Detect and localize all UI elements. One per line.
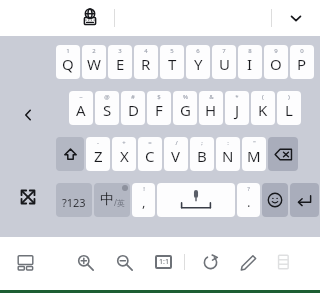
staticText: , [142,193,146,211]
button[interactable]: ; [190,137,214,171]
button[interactable]: Actual size [146,245,180,279]
staticText: = [148,139,152,147]
staticText: W [87,54,101,74]
staticText: 2 [92,47,96,55]
button[interactable]: Layout [8,245,42,279]
button[interactable]: 3 [108,45,132,79]
staticText: 3 [118,47,122,55]
button[interactable]: @ [95,91,119,125]
staticText: Y [194,54,203,74]
staticText: /英 [114,197,125,208]
staticText: Q [62,54,74,74]
button[interactable]: 7 [212,45,236,79]
staticText: ~ [79,93,83,101]
button[interactable]: ? [237,183,260,217]
button[interactable]: Refresh [193,245,227,279]
staticText: ?123 [62,195,86,210]
staticText: . [247,193,251,211]
button[interactable]: 中 [94,183,130,217]
button[interactable]: Change input language [75,3,105,33]
staticText: 0 [300,47,304,55]
staticText: A [76,100,86,120]
button[interactable]: 1 [56,45,80,79]
button[interactable]: Zoom in [68,245,102,279]
staticText: 1 [66,47,70,55]
button[interactable]: 2 [82,45,106,79]
staticText: / [175,139,178,147]
button[interactable]: ! [132,183,155,217]
button[interactable]: 6 [186,45,210,79]
staticText: + [122,139,126,147]
button[interactable]: Space [157,183,235,217]
button[interactable]: Document [267,245,301,279]
staticText: R [141,54,151,74]
staticText: 8 [248,47,252,55]
staticText: O [270,54,282,74]
button[interactable]: % [173,91,197,125]
button[interactable]: 0 [290,45,314,79]
button[interactable]: : [216,137,240,171]
button[interactable]: Resize keyboard [11,180,45,214]
button[interactable]: Emoji [262,183,288,217]
staticText: 4 [144,47,148,55]
staticText: H [205,100,217,120]
button[interactable]: $ [147,91,171,125]
button[interactable]: / [164,137,188,171]
button[interactable]: 4 [134,45,158,79]
button[interactable]: + [112,137,136,171]
button[interactable]: 5 [160,45,184,79]
staticText: K [258,100,268,120]
staticText: J [235,100,240,120]
button[interactable]: 9 [264,45,288,79]
staticText: @ [104,93,110,101]
button[interactable]: ?123 [56,183,92,217]
staticText: 6 [196,47,200,55]
staticText: * [235,93,239,101]
button[interactable]: 8 [238,45,262,79]
button[interactable]: ( [251,91,275,125]
button[interactable]: Back [11,98,45,132]
button[interactable]: Zoom out [107,245,141,279]
staticText: N [222,146,234,166]
button[interactable]: * [225,91,249,125]
staticText: F [155,100,163,120]
button[interactable]: # [121,91,145,125]
staticText: - [97,139,99,147]
staticText: 5 [170,47,174,55]
button[interactable]: Backspace [268,137,298,171]
staticText: V [171,146,181,166]
button[interactable]: = [138,137,162,171]
staticText: 7 [222,47,226,55]
button[interactable]: Edit [231,245,265,279]
staticText: P [297,54,307,74]
button[interactable]: & [199,91,223,125]
staticText: I [247,54,253,74]
button[interactable]: - [86,137,110,171]
staticText: ( [262,93,264,101]
button[interactable]: Collapse keyboard [282,4,310,32]
staticText: : [227,139,229,147]
staticText: ) [288,93,290,101]
staticText: % [183,93,188,101]
staticText: L [285,100,293,120]
staticText: ! [143,185,145,193]
button[interactable]: ~ [69,91,93,125]
staticText: 1:1 [159,257,169,267]
button[interactable]: Shift [56,137,84,171]
staticText: " [253,139,256,147]
staticText: & [209,93,214,101]
staticText: G [180,100,191,120]
button[interactable]: ) [277,91,301,125]
staticText: ? [247,185,250,193]
staticText: U [219,54,230,74]
staticText: 9 [274,47,278,55]
staticText: C [145,146,155,166]
button[interactable]: Enter [290,183,319,217]
staticText: ; [201,139,203,147]
staticText: S [103,100,112,120]
staticText: 中 [100,191,114,209]
staticText: # [131,93,135,101]
button[interactable]: " [242,137,266,171]
staticText: T [168,54,177,74]
staticText: E [116,54,125,74]
